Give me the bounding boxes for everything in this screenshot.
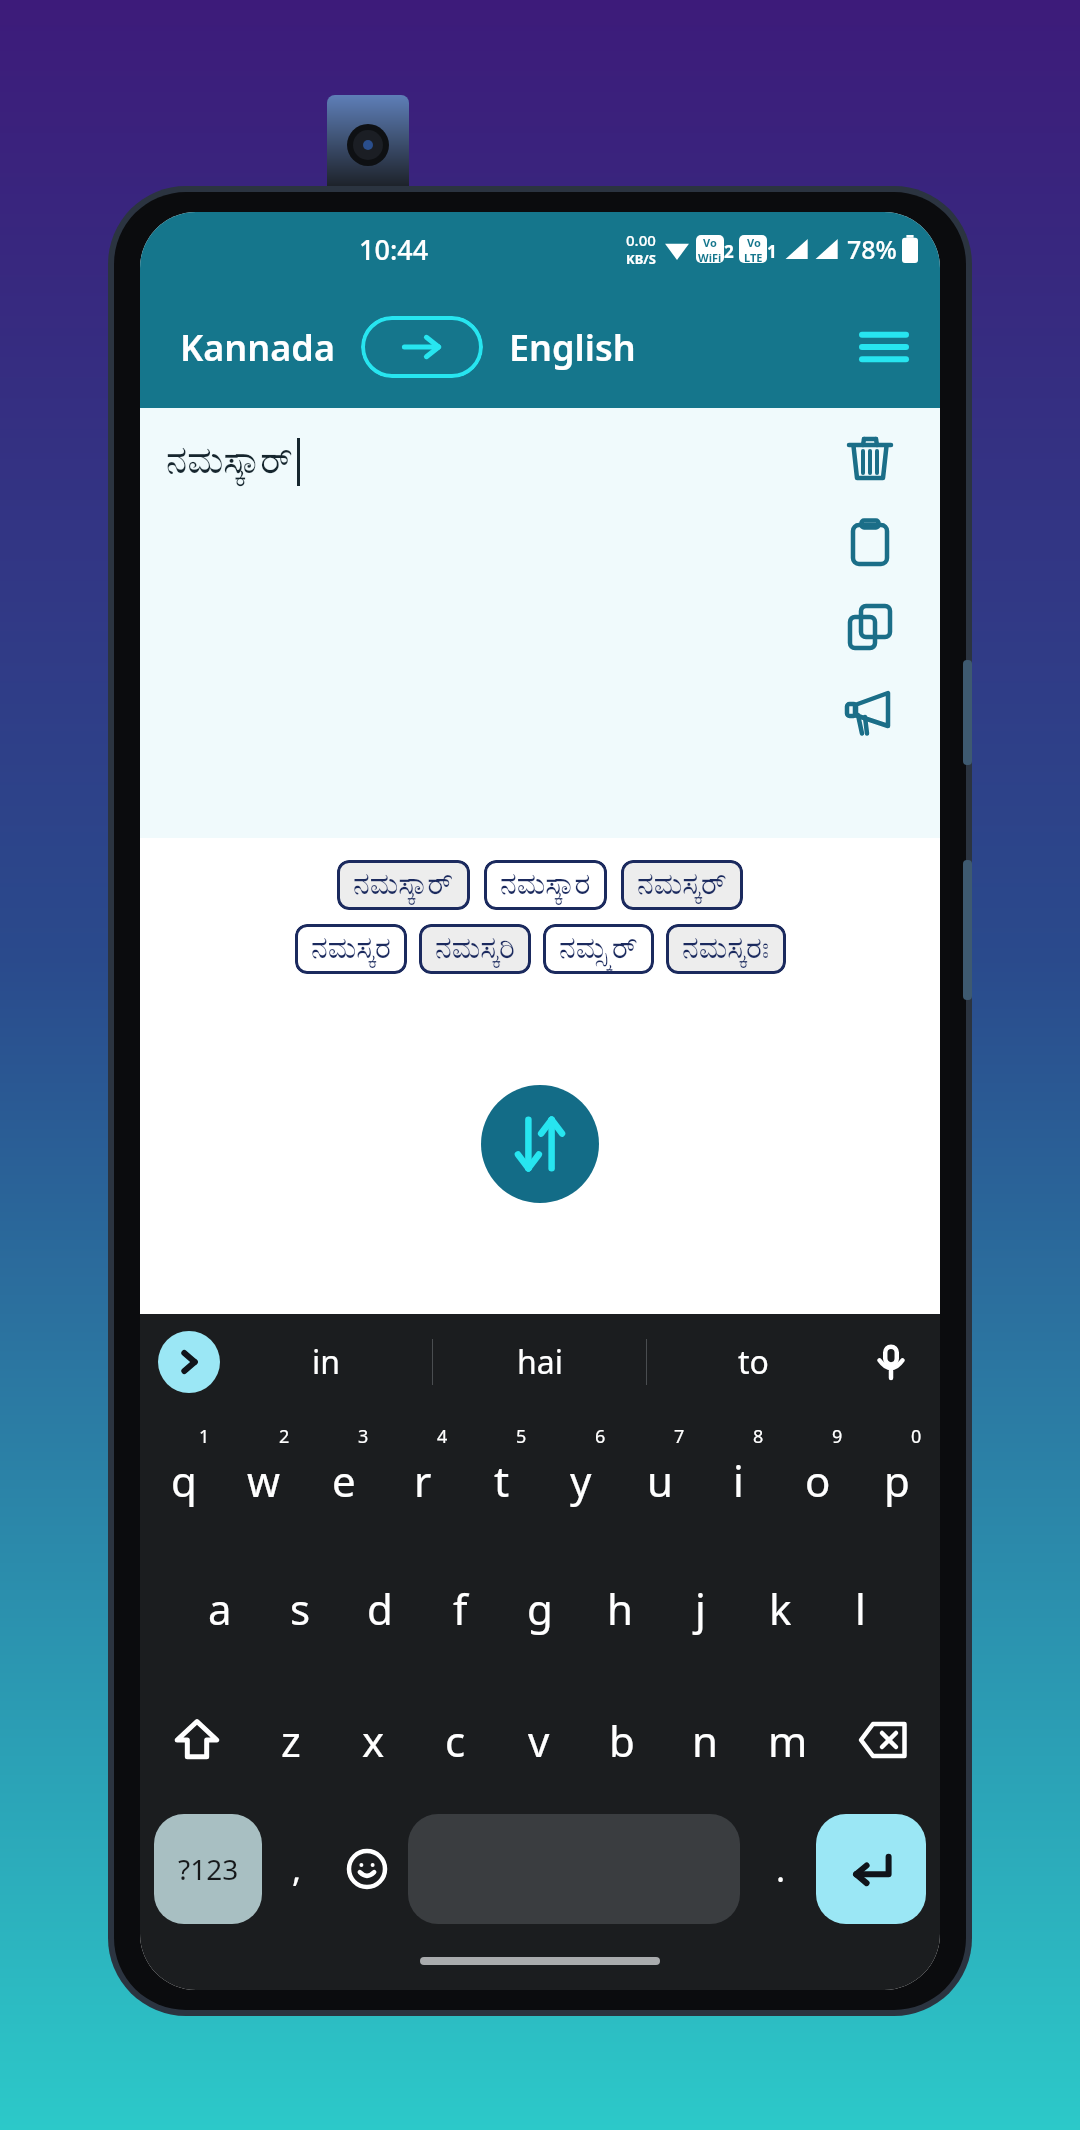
button[interactable]: hai — [433, 1340, 646, 1384]
button[interactable]: ನಮಸ್ಕರ — [295, 924, 407, 974]
button[interactable]: l — [820, 1542, 900, 1674]
button[interactable]: 4 — [383, 1410, 462, 1542]
staticText: , — [292, 1846, 302, 1892]
staticText: 0 — [911, 1424, 922, 1449]
staticText: ನಮಸ್ಕರಃ — [682, 934, 770, 964]
button[interactable]: Backspace — [829, 1674, 936, 1806]
button[interactable]: b — [580, 1674, 663, 1806]
button[interactable]: ನಮಸ್ಕರಿ — [419, 924, 531, 974]
staticText: r — [414, 1452, 432, 1509]
button[interactable]: Emoji — [332, 1814, 402, 1924]
button[interactable]: c — [414, 1674, 497, 1806]
button[interactable]: to — [647, 1340, 860, 1384]
button[interactable]: s — [260, 1542, 340, 1674]
button[interactable]: 6 — [541, 1410, 620, 1542]
button[interactable]: Shift — [144, 1674, 250, 1806]
button[interactable]: a — [180, 1542, 260, 1674]
button[interactable]: n — [663, 1674, 746, 1806]
button[interactable]: Paste — [835, 508, 905, 578]
staticText: ನಮಸ್ಕಾರ್ — [353, 870, 454, 900]
staticText: Kannada — [180, 323, 335, 372]
button[interactable]: Space — [408, 1814, 740, 1924]
staticText: in — [312, 1340, 341, 1384]
button[interactable]: Enter — [816, 1814, 926, 1924]
button[interactable]: in — [220, 1340, 432, 1384]
staticText: d — [367, 1580, 393, 1637]
button[interactable]: v — [497, 1674, 580, 1806]
button[interactable]: k — [740, 1542, 820, 1674]
staticText: ನಮಸ್ಕಾರ್ — [166, 443, 293, 481]
button[interactable]: 5 — [462, 1410, 541, 1542]
button[interactable]: . — [746, 1814, 816, 1924]
staticText: n — [692, 1712, 718, 1769]
staticText: 6 — [595, 1424, 606, 1449]
staticText: English — [509, 323, 636, 372]
staticText: k — [769, 1580, 792, 1637]
button[interactable]: d — [340, 1542, 420, 1674]
button[interactable]: 2 — [224, 1410, 304, 1542]
staticText: h — [607, 1580, 633, 1637]
staticText: 2 — [279, 1424, 290, 1449]
staticText: w — [247, 1452, 281, 1509]
staticText: 8 — [753, 1424, 764, 1449]
button[interactable]: z — [250, 1674, 332, 1806]
button[interactable]: f — [420, 1542, 500, 1674]
button[interactable]: j — [660, 1542, 740, 1674]
staticText: v — [528, 1712, 550, 1769]
button[interactable]: m — [746, 1674, 829, 1806]
staticText: LTE — [744, 250, 763, 263]
button[interactable]: Speak — [835, 676, 905, 746]
staticText: e — [332, 1452, 356, 1509]
button[interactable]: Kannada — [174, 315, 341, 380]
staticText: a — [208, 1580, 232, 1637]
staticText: KB/S — [626, 250, 656, 268]
staticText: m — [768, 1712, 808, 1769]
staticText: ನಮ್ಸ್ಕರ್ — [559, 934, 638, 964]
staticText: o — [805, 1452, 831, 1509]
button[interactable]: Translate — [481, 1085, 599, 1203]
staticText: t — [494, 1452, 510, 1509]
button[interactable]: 1 — [144, 1410, 224, 1542]
button[interactable]: 7 — [620, 1410, 699, 1542]
button[interactable]: Menu — [854, 317, 914, 377]
button[interactable]: x — [332, 1674, 414, 1806]
staticText: z — [281, 1712, 301, 1769]
button[interactable]: 0 — [857, 1410, 936, 1542]
button[interactable]: ನಮಸ್ಕಾರ — [484, 860, 607, 910]
staticText: Vo — [747, 235, 761, 250]
button[interactable]: ನಮಸ್ಕರ್ — [621, 860, 743, 910]
staticText: ನಮಸ್ಕಾರ — [500, 870, 591, 900]
button[interactable]: English — [503, 315, 642, 380]
staticText: . — [776, 1846, 786, 1892]
button[interactable]: 8 — [699, 1410, 778, 1542]
staticText: to — [738, 1340, 769, 1384]
button[interactable]: 9 — [778, 1410, 857, 1542]
button[interactable]: Voice input — [860, 1331, 922, 1393]
button[interactable]: g — [500, 1542, 580, 1674]
staticText: 1 — [767, 240, 777, 263]
staticText: g — [527, 1580, 553, 1637]
staticText: hai — [517, 1340, 563, 1384]
staticText: ನಮಸ್ಕರಿ — [435, 934, 515, 964]
staticText: x — [362, 1712, 385, 1769]
staticText: ?123 — [178, 1850, 239, 1888]
button[interactable]: h — [580, 1542, 660, 1674]
staticText: 3 — [358, 1424, 369, 1449]
staticText: 5 — [516, 1424, 527, 1449]
button[interactable]: ನಮ್ಸ್ಕರ್ — [543, 924, 654, 974]
button[interactable]: Swap translation direction — [361, 316, 483, 378]
button[interactable]: , — [262, 1814, 332, 1924]
staticText: 10:44 — [359, 231, 429, 268]
button[interactable]: 3 — [304, 1410, 383, 1542]
button[interactable]: ?123 — [154, 1814, 262, 1924]
button[interactable]: More suggestions — [158, 1331, 220, 1393]
button[interactable]: ನಮಸ್ಕರಃ — [666, 924, 786, 974]
staticText: p — [884, 1452, 910, 1509]
staticText: f — [453, 1580, 468, 1637]
staticText: c — [445, 1712, 466, 1769]
button[interactable]: Clear text — [835, 424, 905, 494]
button[interactable]: Copy — [835, 592, 905, 662]
staticText: ನಮಸ್ಕರ್ — [637, 870, 727, 900]
button[interactable]: ನಮಸ್ಕಾರ್ — [337, 860, 470, 910]
staticText: y — [570, 1452, 592, 1509]
